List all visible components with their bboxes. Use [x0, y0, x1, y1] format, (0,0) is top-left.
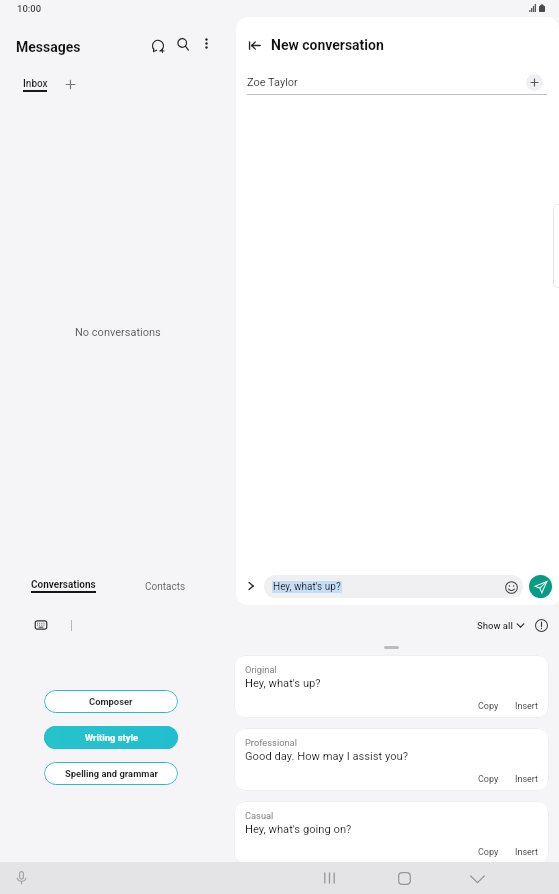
staticText: Hey, what's up? [273, 581, 341, 593]
button[interactable]: Keyboard [30, 614, 52, 636]
button[interactable]: Writing style [44, 726, 178, 749]
button[interactable]: Copy [476, 701, 501, 712]
button[interactable]: Information [532, 616, 551, 635]
button[interactable]: Send [529, 575, 552, 598]
button[interactable]: Zoe Taylor [247, 76, 298, 89]
button[interactable]: Back [242, 33, 267, 58]
button[interactable]: New conversation [145, 33, 172, 60]
staticText: Contacts [145, 581, 186, 593]
button[interactable]: Show all [474, 617, 528, 634]
button[interactable]: Insert [513, 701, 541, 712]
button[interactable]: Composer [44, 690, 178, 713]
button[interactable]: Home [392, 866, 416, 890]
button[interactable]: Conversations [21, 571, 106, 601]
staticText: Professional [245, 737, 297, 748]
staticText: New conversation [271, 37, 384, 53]
button[interactable]: Copy [476, 847, 501, 858]
button[interactable]: Add recipient [526, 74, 543, 91]
button[interactable]: Add [58, 72, 82, 96]
button[interactable]: Expand toolbar [243, 578, 259, 594]
staticText: Messages [16, 39, 81, 55]
staticText: Hey, what's up? [245, 677, 321, 690]
button[interactable]: Original [234, 655, 549, 718]
button[interactable]: Hide keyboard [465, 867, 489, 891]
staticText: Original [245, 664, 277, 675]
button[interactable]: Voice input [9, 866, 33, 890]
button[interactable]: Recent apps [318, 866, 342, 890]
staticText: Spelling and grammar [65, 768, 158, 779]
staticText: No conversations [75, 326, 161, 339]
button[interactable]: Search [170, 31, 197, 58]
button[interactable]: Spelling and grammar [44, 762, 178, 785]
button[interactable]: Casual [234, 801, 549, 864]
staticText: Copy [478, 847, 499, 858]
button[interactable]: Insert [513, 774, 541, 785]
button[interactable]: Professional [234, 728, 549, 791]
staticText: Casual [245, 810, 274, 821]
staticText: Show all [477, 620, 513, 631]
button[interactable]: More options [194, 31, 219, 56]
button[interactable]: Insert [513, 847, 541, 858]
button[interactable]: Hey, what's up? [264, 575, 523, 598]
staticText: Composer [89, 696, 133, 707]
button[interactable]: Copy [476, 774, 501, 785]
button[interactable]: Emoji [502, 578, 520, 596]
staticText: Writing style [85, 732, 138, 743]
staticText: Insert [515, 847, 539, 858]
staticText: Hey, what's going on? [245, 823, 352, 836]
staticText: Copy [478, 774, 499, 785]
staticText: Insert [515, 774, 539, 785]
staticText: Inbox [23, 78, 48, 90]
button[interactable]: Inbox [14, 70, 57, 100]
staticText: Copy [478, 701, 499, 712]
staticText: Conversations [31, 579, 96, 591]
staticText: Good day. How may I assist you? [245, 750, 409, 763]
staticText: Insert [515, 701, 539, 712]
staticText: 10:00 [17, 3, 42, 14]
button[interactable]: Contacts [135, 573, 196, 601]
